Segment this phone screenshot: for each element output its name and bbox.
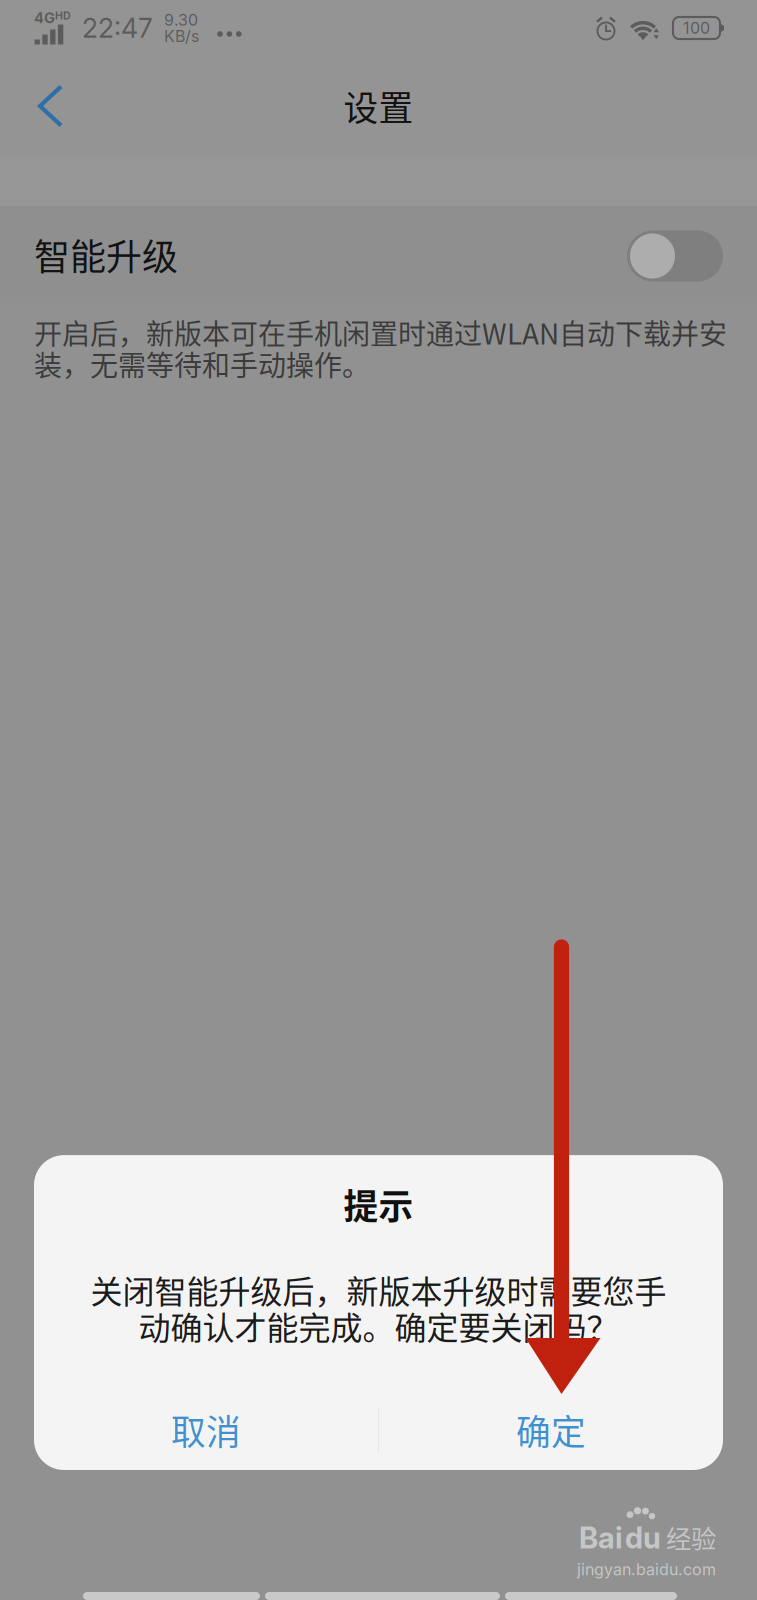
- staticText: 100: [683, 18, 710, 38]
- button[interactable]: 智能升级, 关闭: [627, 230, 723, 281]
- staticText: 9.30: [164, 10, 198, 29]
- staticText: 4G: [34, 9, 55, 27]
- staticText: du: [625, 1520, 661, 1556]
- button[interactable]: 返回: [0, 56, 93, 156]
- staticText: 设置: [343, 81, 413, 131]
- staticText: KB/s: [164, 26, 199, 46]
- staticText: Bai: [579, 1520, 623, 1556]
- staticText: 提示: [343, 1179, 413, 1229]
- staticText: jingyan.baidu.com: [577, 1560, 716, 1579]
- staticText: 取消: [171, 1405, 241, 1455]
- staticText: 22:47: [82, 12, 153, 44]
- staticText: 开启后，新版本可在手机闲置时通过WLAN自动下载并安: [34, 312, 727, 352]
- button[interactable]: 确定: [379, 1393, 723, 1467]
- staticText: 确定: [516, 1405, 586, 1455]
- staticText: 关闭智能升级后，新版本升级时需要您手: [90, 1266, 666, 1313]
- staticText: HD: [55, 9, 71, 22]
- button[interactable]: 取消: [34, 1393, 378, 1467]
- staticText: 动确认才能完成。确定要关闭吗？: [138, 1303, 618, 1349]
- staticText: 经验: [666, 1519, 716, 1556]
- staticText: 智能升级: [34, 228, 178, 280]
- staticText: 装，无需等待和手动操作。: [34, 343, 370, 384]
